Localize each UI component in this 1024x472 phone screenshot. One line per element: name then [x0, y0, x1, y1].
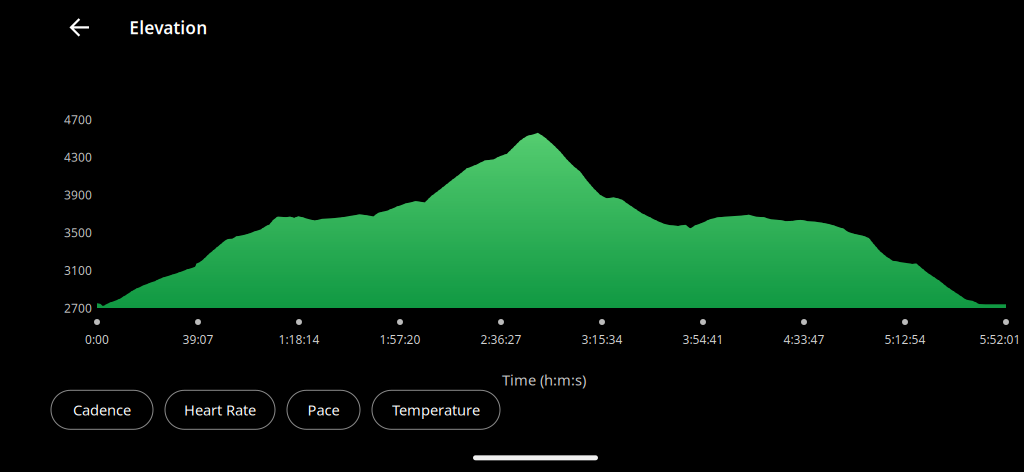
- staticText: Temperature: [392, 400, 480, 420]
- staticText: 2700: [64, 300, 92, 316]
- button[interactable]: Temperature: [372, 390, 500, 429]
- staticText: 1:57:20: [379, 331, 420, 347]
- button[interactable]: Back: [58, 5, 102, 49]
- staticText: Elevation: [129, 16, 207, 39]
- staticText: 5:12:54: [884, 331, 925, 347]
- staticText: 1:18:14: [278, 331, 319, 347]
- staticText: Heart Rate: [184, 400, 256, 420]
- staticText: Cadence: [73, 400, 131, 420]
- staticText: 3100: [64, 262, 92, 278]
- button[interactable]: Pace: [287, 390, 360, 429]
- staticText: 5:52:01: [979, 331, 1020, 347]
- staticText: 4:33:47: [783, 331, 824, 347]
- staticText: 2:36:27: [480, 331, 521, 347]
- staticText: 3500: [64, 225, 92, 240]
- staticText: 39:07: [182, 331, 213, 347]
- button[interactable]: Cadence: [51, 390, 153, 429]
- staticText: 0:00: [85, 331, 109, 347]
- staticText: 3900: [64, 187, 92, 203]
- staticText: 3:15:34: [581, 331, 622, 347]
- staticText: Pace: [307, 400, 339, 420]
- button[interactable]: Heart Rate: [165, 390, 275, 429]
- staticText: Time (h:m:s): [502, 370, 586, 390]
- staticText: 3:54:41: [682, 331, 723, 347]
- staticText: 4300: [64, 149, 92, 165]
- staticText: 4700: [64, 111, 92, 127]
